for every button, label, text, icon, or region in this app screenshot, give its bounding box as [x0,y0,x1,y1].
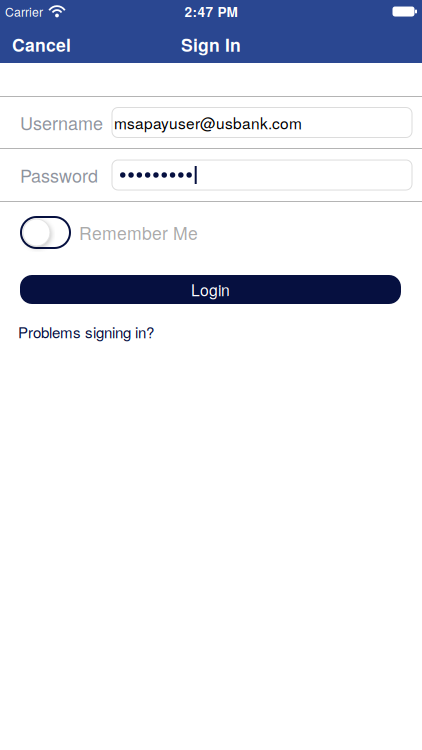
staticText: Carrier [5,3,43,20]
button[interactable] [21,217,70,248]
staticText: Username [20,110,103,135]
staticText: Cancel [12,32,71,57]
button[interactable] [112,160,412,190]
button[interactable]: msapayuser@usbank.com [112,107,412,137]
staticText: Remember Me [79,220,198,245]
button[interactable]: Cancel [0,32,71,57]
staticText: 2:47 PM [184,2,237,21]
button[interactable]: Problems signing in? [18,321,154,343]
button[interactable]: Login [20,275,401,304]
staticText: msapayuser@usbank.com [114,111,302,133]
staticText: Password [20,162,98,188]
staticText: Problems signing in? [18,321,154,343]
staticText: Sign In [181,32,241,57]
staticText: Login [191,278,230,301]
